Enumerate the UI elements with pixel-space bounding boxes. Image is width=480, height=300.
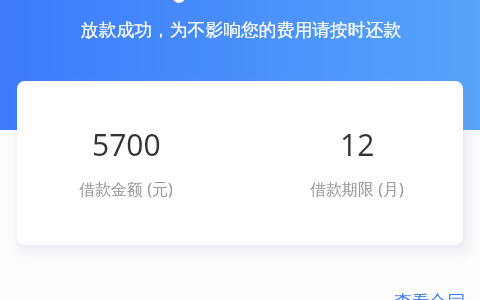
staticText: 查看合同 xyxy=(394,291,466,300)
button[interactable]: 5700 xyxy=(17,81,463,245)
button[interactable]: 查看合同 xyxy=(383,281,477,300)
staticText: 放款成功，为不影响您的费用请按时还款 xyxy=(1,19,480,41)
staticText: 借款金额 (元) xyxy=(79,178,173,200)
other: Success xyxy=(173,0,185,3)
staticText: 12 xyxy=(340,124,375,165)
staticText: 5700 xyxy=(92,124,161,165)
staticText: 借款期限 (月) xyxy=(310,178,404,200)
